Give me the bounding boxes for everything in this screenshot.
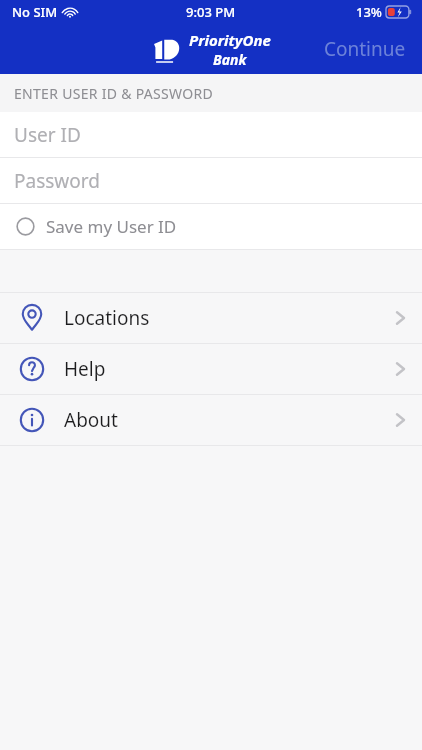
button[interactable]: User ID xyxy=(0,112,422,157)
button[interactable]: Save my User ID xyxy=(0,204,422,249)
staticText: 13% xyxy=(356,3,382,21)
staticText: Continue xyxy=(324,36,406,62)
staticText: User ID xyxy=(14,122,81,148)
staticText: Locations xyxy=(64,305,150,331)
button[interactable]: About xyxy=(0,395,422,445)
button[interactable]: Password xyxy=(0,158,422,203)
staticText: Save my User ID xyxy=(46,215,177,238)
staticText: PriorityOne xyxy=(189,30,271,50)
staticText: About xyxy=(64,407,118,433)
button[interactable]: Locations xyxy=(0,293,422,343)
staticText: Password xyxy=(14,168,100,194)
staticText: No SIM xyxy=(12,3,58,21)
staticText: 9:03 PM xyxy=(186,3,236,21)
button[interactable]: Continue xyxy=(308,26,422,72)
staticText: Help xyxy=(64,356,106,382)
staticText: ENTER USER ID & PASSWORD xyxy=(14,84,213,103)
staticText: Bank xyxy=(213,50,247,69)
button[interactable]: Help xyxy=(0,344,422,394)
